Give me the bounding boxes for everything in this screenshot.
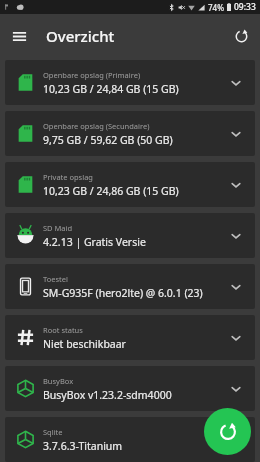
button[interactable]: Refresh <box>228 23 254 49</box>
staticText: Sqlite <box>43 427 63 437</box>
staticText: Openbare opslag (Primaire) <box>43 70 141 80</box>
button[interactable]: Open navigation menu <box>6 23 32 49</box>
button[interactable]: Sqlite <box>5 417 255 462</box>
staticText: Toestel <box>43 274 68 284</box>
staticText: 10,23 GB / 24,86 GB (15 GB) <box>43 184 179 198</box>
staticText: BusyBox <box>43 376 74 386</box>
button[interactable]: Openbare opslag (Primaire) <box>5 60 255 105</box>
button[interactable]: BusyBox <box>5 366 255 411</box>
staticText: 4.2.13 | Gratis Versie <box>43 235 146 249</box>
staticText: 3.7.6.3-Titanium <box>43 439 123 453</box>
staticText: SD Maid <box>43 223 73 233</box>
staticText: 10,23 GB / 24,84 GB (15 GB) <box>43 82 179 96</box>
staticText: Overzicht <box>46 26 115 46</box>
staticText: SM-G935F (hero2lte) @ 6.0.1 (23) <box>43 286 203 300</box>
button[interactable]: SD Maid <box>5 213 255 258</box>
button[interactable]: Expand Private opslag <box>219 162 253 207</box>
button[interactable]: Openbare opslag (Secundaire) <box>5 111 255 156</box>
staticText: BusyBox v1.23.2-sdm4000 <box>43 388 172 402</box>
button[interactable]: Expand Root status <box>219 315 253 360</box>
button[interactable]: Refresh overview <box>204 408 251 455</box>
button[interactable]: Expand Sqlite <box>219 417 253 462</box>
staticText: 74% <box>208 2 224 13</box>
button[interactable]: Expand Toestel <box>219 264 253 309</box>
button[interactable]: Expand Openbare opslag (Primaire) <box>219 60 253 105</box>
button[interactable]: Expand BusyBox <box>219 366 253 411</box>
staticText: Openbare opslag (Secundaire) <box>43 121 150 131</box>
staticText: 09:33 <box>234 1 256 13</box>
staticText: Root status <box>43 325 83 335</box>
button[interactable]: Expand SD Maid <box>219 213 253 258</box>
button[interactable]: Expand Openbare opslag (Secundaire) <box>219 111 253 156</box>
staticText: 9,75 GB / 59,62 GB (50 GB) <box>43 133 173 147</box>
button[interactable]: Root status <box>5 315 255 360</box>
button[interactable]: Toestel <box>5 264 255 309</box>
button[interactable]: Private opslag <box>5 162 255 207</box>
staticText: Niet beschikbaar <box>43 337 126 351</box>
staticText: Private opslag <box>43 172 93 182</box>
